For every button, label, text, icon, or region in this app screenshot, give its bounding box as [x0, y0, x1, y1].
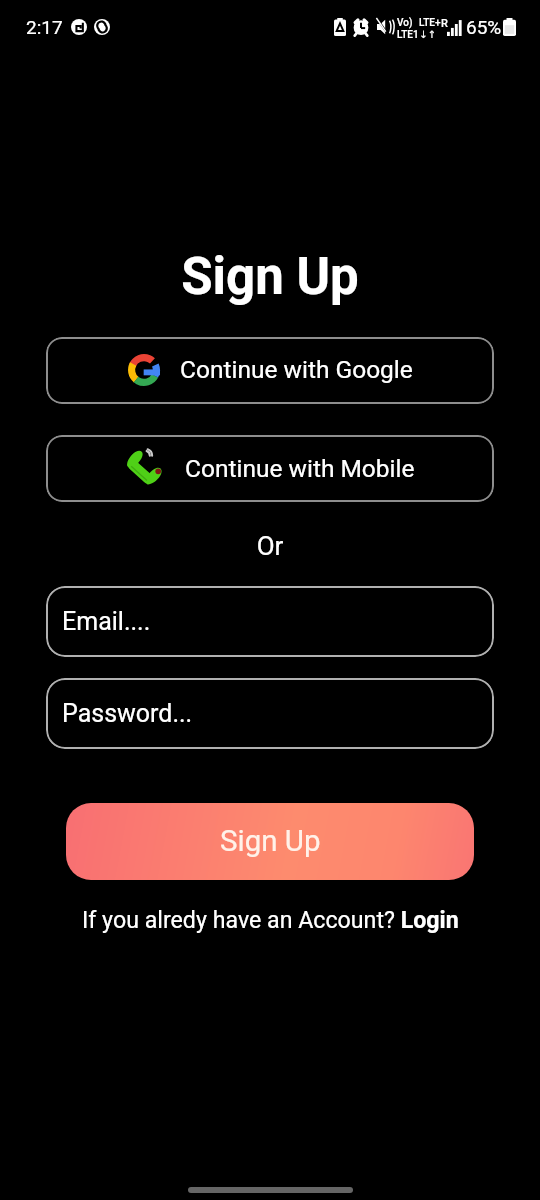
- staticText: Sign Up: [220, 824, 321, 859]
- button[interactable]: Password...: [46, 678, 494, 749]
- button[interactable]: Email....: [46, 586, 494, 657]
- staticText: Email....: [62, 607, 151, 636]
- staticText: If you alredy have an Account? Login: [82, 906, 459, 933]
- staticText: Continue with Google: [180, 355, 413, 384]
- staticText: R: [441, 17, 448, 30]
- staticText: Sign Up: [0, 247, 540, 307]
- staticText: 65%: [466, 16, 502, 38]
- staticText: Password...: [62, 699, 193, 728]
- button[interactable]: Continue with Google: [46, 337, 494, 404]
- staticText: LTE+: [419, 17, 441, 29]
- button[interactable]: If you alredy have an Account? Login: [82, 906, 459, 933]
- staticText: ↓↑: [419, 29, 436, 41]
- staticText: Or: [0, 531, 540, 561]
- staticText: Continue with Mobile: [185, 454, 415, 483]
- staticText: Vo): [397, 17, 413, 29]
- staticText: LTE1: [397, 29, 419, 41]
- staticText: 2:17: [26, 16, 63, 38]
- button[interactable]: Sign Up: [66, 803, 474, 880]
- button[interactable]: Continue with Mobile: [46, 435, 494, 502]
